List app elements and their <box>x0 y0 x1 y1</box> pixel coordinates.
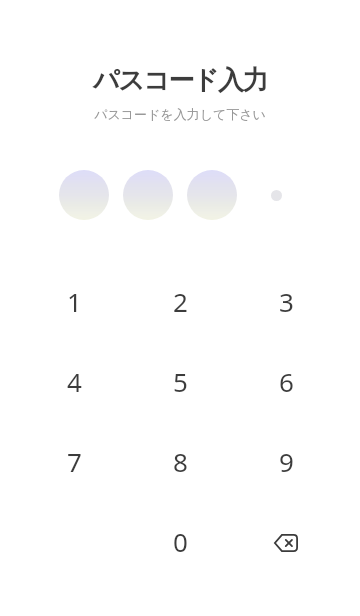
button[interactable]: 9 <box>233 421 339 501</box>
staticText: 5 <box>173 364 188 399</box>
staticText: パスコードを入力して下さい <box>94 106 266 122</box>
button[interactable]: 5 <box>127 341 233 421</box>
button[interactable]: 7 <box>21 421 127 501</box>
button[interactable]: 4 <box>21 341 127 421</box>
button[interactable]: 1 <box>21 261 127 341</box>
staticText: 0 <box>173 524 188 559</box>
staticText: 1 <box>67 284 82 319</box>
staticText: パスコード入力 <box>93 64 267 97</box>
staticText: 8 <box>173 444 188 479</box>
staticText: 3 <box>279 284 294 319</box>
staticText: 4 <box>67 364 82 399</box>
button[interactable]: 0 <box>127 501 233 581</box>
button[interactable]: 3 <box>233 261 339 341</box>
staticText: 6 <box>279 364 294 399</box>
button[interactable]: Backspace <box>233 501 339 581</box>
staticText: 7 <box>67 444 82 479</box>
staticText: 2 <box>173 284 188 319</box>
button[interactable]: 8 <box>127 421 233 501</box>
button[interactable]: 6 <box>233 341 339 421</box>
button[interactable]: 2 <box>127 261 233 341</box>
staticText: 9 <box>279 444 294 479</box>
